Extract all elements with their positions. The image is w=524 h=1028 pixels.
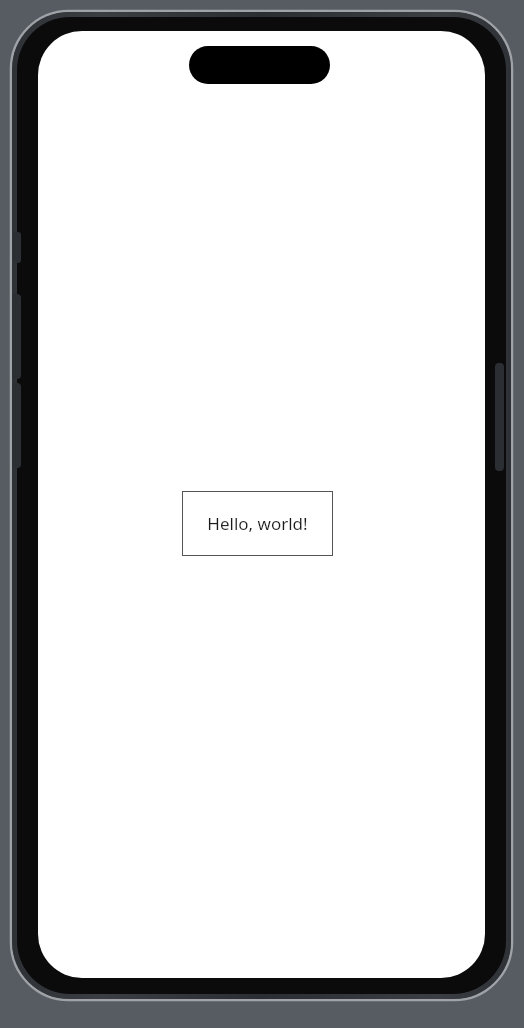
staticText: Hello, world! bbox=[207, 512, 308, 535]
button[interactable]: Hello, world! bbox=[182, 491, 333, 556]
other: Dynamic Island bbox=[189, 46, 330, 84]
button[interactable]: Ring/Silent switch bbox=[13, 232, 21, 263]
button[interactable]: Power bbox=[495, 363, 504, 471]
